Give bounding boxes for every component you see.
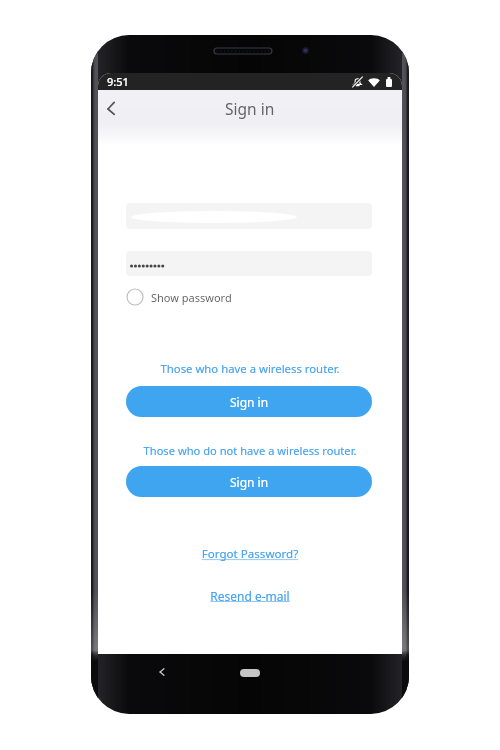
button[interactable]: [126, 251, 372, 276]
staticText: Sign in: [225, 98, 275, 119]
staticText: Sign in: [230, 474, 269, 490]
button[interactable]: Resend e-mail: [98, 588, 402, 604]
button[interactable]: [126, 203, 372, 229]
button[interactable]: Show password: [125, 287, 232, 307]
staticText: 9:51: [107, 74, 129, 89]
button[interactable]: Home: [240, 669, 260, 677]
button[interactable]: Sign in: [126, 386, 372, 417]
staticText: Sign in: [230, 394, 269, 410]
button[interactable]: Back: [150, 660, 174, 684]
button[interactable]: Back: [98, 90, 126, 122]
staticText: Show password: [151, 290, 232, 305]
button[interactable]: Those who have a wireless router.: [98, 361, 402, 376]
button[interactable]: Those who do not have a wireless router.: [98, 443, 402, 458]
button[interactable]: Sign in: [126, 466, 372, 497]
button[interactable]: Forgot Password?: [98, 546, 402, 562]
